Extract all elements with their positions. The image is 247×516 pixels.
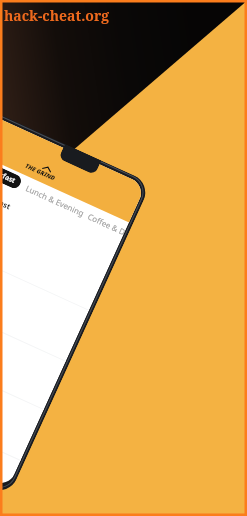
button[interactable]: Big Breakfast [0,169,120,311]
staticText: Breakfast [0,163,17,186]
staticText: Coffee & Drinks [86,211,127,237]
button[interactable]: The Grind logo [26,157,59,178]
button[interactable]: Coffee & Drinks [86,210,127,237]
button[interactable]: Breakfast [0,159,23,190]
button[interactable]: Granola Bowl [0,337,44,461]
button[interactable]: Lunch & Evening [24,181,86,218]
staticText: hack-cheat.org [4,6,110,25]
staticText: Big Breakfast [0,181,13,212]
button[interactable]: Pancake Stack [0,238,89,362]
staticText: Lunch & Evening [24,182,86,218]
button[interactable]: Garden Omelette [0,289,66,410]
staticText: THE GRIND [24,162,57,183]
button[interactable]: Sourdough Toastie [0,388,20,488]
